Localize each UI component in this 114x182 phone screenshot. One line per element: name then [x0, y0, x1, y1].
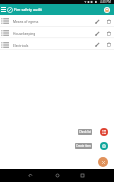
button[interactable]: Home — [52, 170, 63, 181]
button[interactable]: Edit Electricals — [93, 39, 102, 50]
button[interactable]: Edit Means of egress — [93, 15, 102, 27]
button[interactable]: Means of egress — [0, 15, 114, 27]
button[interactable]: Create item — [100, 142, 108, 150]
button[interactable]: Check list — [100, 128, 108, 136]
staticText: Create item — [76, 144, 91, 148]
button[interactable]: Delete Means of egress — [104, 15, 113, 27]
button[interactable]: Account — [101, 4, 112, 15]
button[interactable]: Check list — [78, 129, 92, 135]
staticText: 4:30 PM — [100, 0, 111, 4]
button[interactable]: Housekeeping — [0, 27, 114, 39]
button[interactable]: Navigation menu — [0, 4, 7, 15]
button[interactable]: Delete Electricals — [104, 39, 113, 50]
button[interactable]: Close actions menu — [98, 157, 108, 167]
staticText: Means of egress — [13, 19, 39, 23]
button[interactable]: Delete Housekeeping — [104, 27, 113, 39]
staticText: Fire safety audit — [14, 7, 42, 12]
button[interactable]: Back — [25, 170, 36, 181]
button[interactable]: Recent apps — [77, 170, 88, 181]
button[interactable]: Electricals — [0, 39, 114, 50]
button[interactable]: Audit status — [7, 4, 13, 15]
staticText: Housekeeping — [13, 31, 36, 35]
staticText: Electricals — [13, 43, 29, 47]
button[interactable]: Edit Housekeeping — [93, 27, 102, 39]
button[interactable]: Create item — [75, 143, 92, 149]
staticText: Check list — [79, 130, 91, 134]
